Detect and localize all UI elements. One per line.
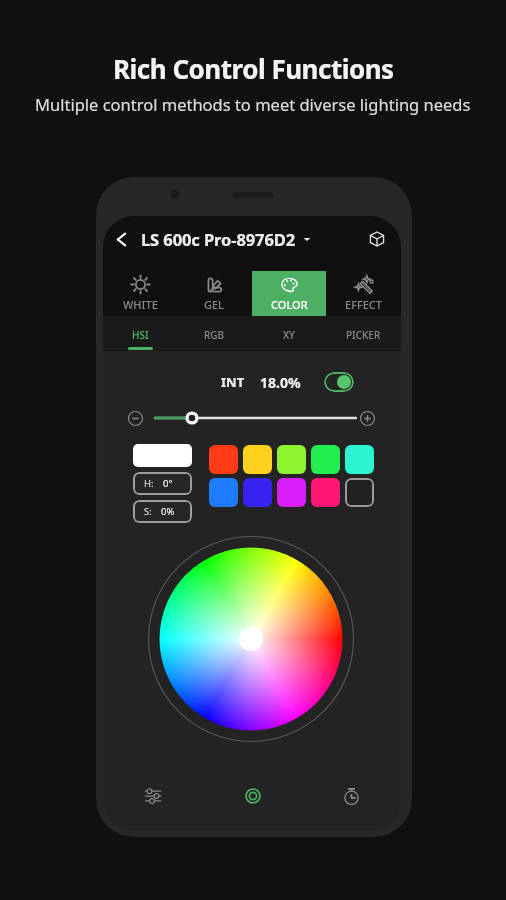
button[interactable]: Back [110, 228, 132, 250]
staticText: 0° [163, 477, 173, 490]
button[interactable]: Increase [360, 411, 375, 426]
staticText: WHITE [123, 297, 158, 312]
button[interactable]: GEL [177, 271, 251, 316]
staticText: INT [221, 373, 245, 391]
button[interactable]: Color swatch [311, 478, 340, 507]
staticText: HSI [132, 328, 149, 342]
button[interactable]: Color swatch [243, 445, 272, 474]
button[interactable]: Device model [366, 228, 388, 250]
button[interactable]: Custom color [345, 478, 374, 507]
staticText: S: [144, 505, 152, 518]
staticText: COLOR [271, 297, 308, 312]
button[interactable]: HSI [103, 316, 177, 351]
staticText: PICKER [346, 328, 381, 342]
button[interactable]: Color swatch [209, 445, 238, 474]
button[interactable]: Settings [103, 767, 203, 825]
staticText: LS 600c Pro-8976D2 [141, 228, 296, 250]
staticText: EFFECT [345, 297, 383, 312]
button[interactable]: PICKER [326, 316, 401, 351]
button[interactable]: Color swatch [277, 445, 306, 474]
staticText: RGB [204, 328, 225, 342]
button[interactable]: COLOR [252, 271, 326, 316]
button[interactable]: H: [133, 472, 192, 495]
staticText: 18.0% [260, 373, 301, 392]
button[interactable]: XY [251, 316, 326, 351]
button[interactable]: Color swatch [345, 445, 374, 474]
staticText: XY [283, 328, 295, 342]
staticText: GEL [204, 297, 224, 312]
button[interactable]: Timer [302, 767, 401, 825]
staticText: Multiple control methods to meet diverse… [35, 93, 471, 115]
button[interactable]: White preset [133, 444, 192, 467]
button[interactable]: WHITE [103, 271, 177, 316]
button[interactable]: EFFECT [327, 271, 401, 316]
button[interactable]: Color swatch [277, 478, 306, 507]
button[interactable]: Color swatch [311, 445, 340, 474]
button[interactable]: Color swatch [209, 478, 238, 507]
button[interactable]: Power [203, 767, 302, 825]
button[interactable]: Intensity toggle [324, 372, 354, 392]
staticText: 0% [161, 505, 175, 518]
staticText: Rich Control Functions [113, 51, 394, 86]
button[interactable]: Color swatch [243, 478, 272, 507]
button[interactable]: RGB [177, 316, 251, 351]
button[interactable]: S: [133, 500, 192, 523]
staticText: H: [144, 477, 154, 490]
button[interactable]: Decrease [128, 411, 143, 426]
